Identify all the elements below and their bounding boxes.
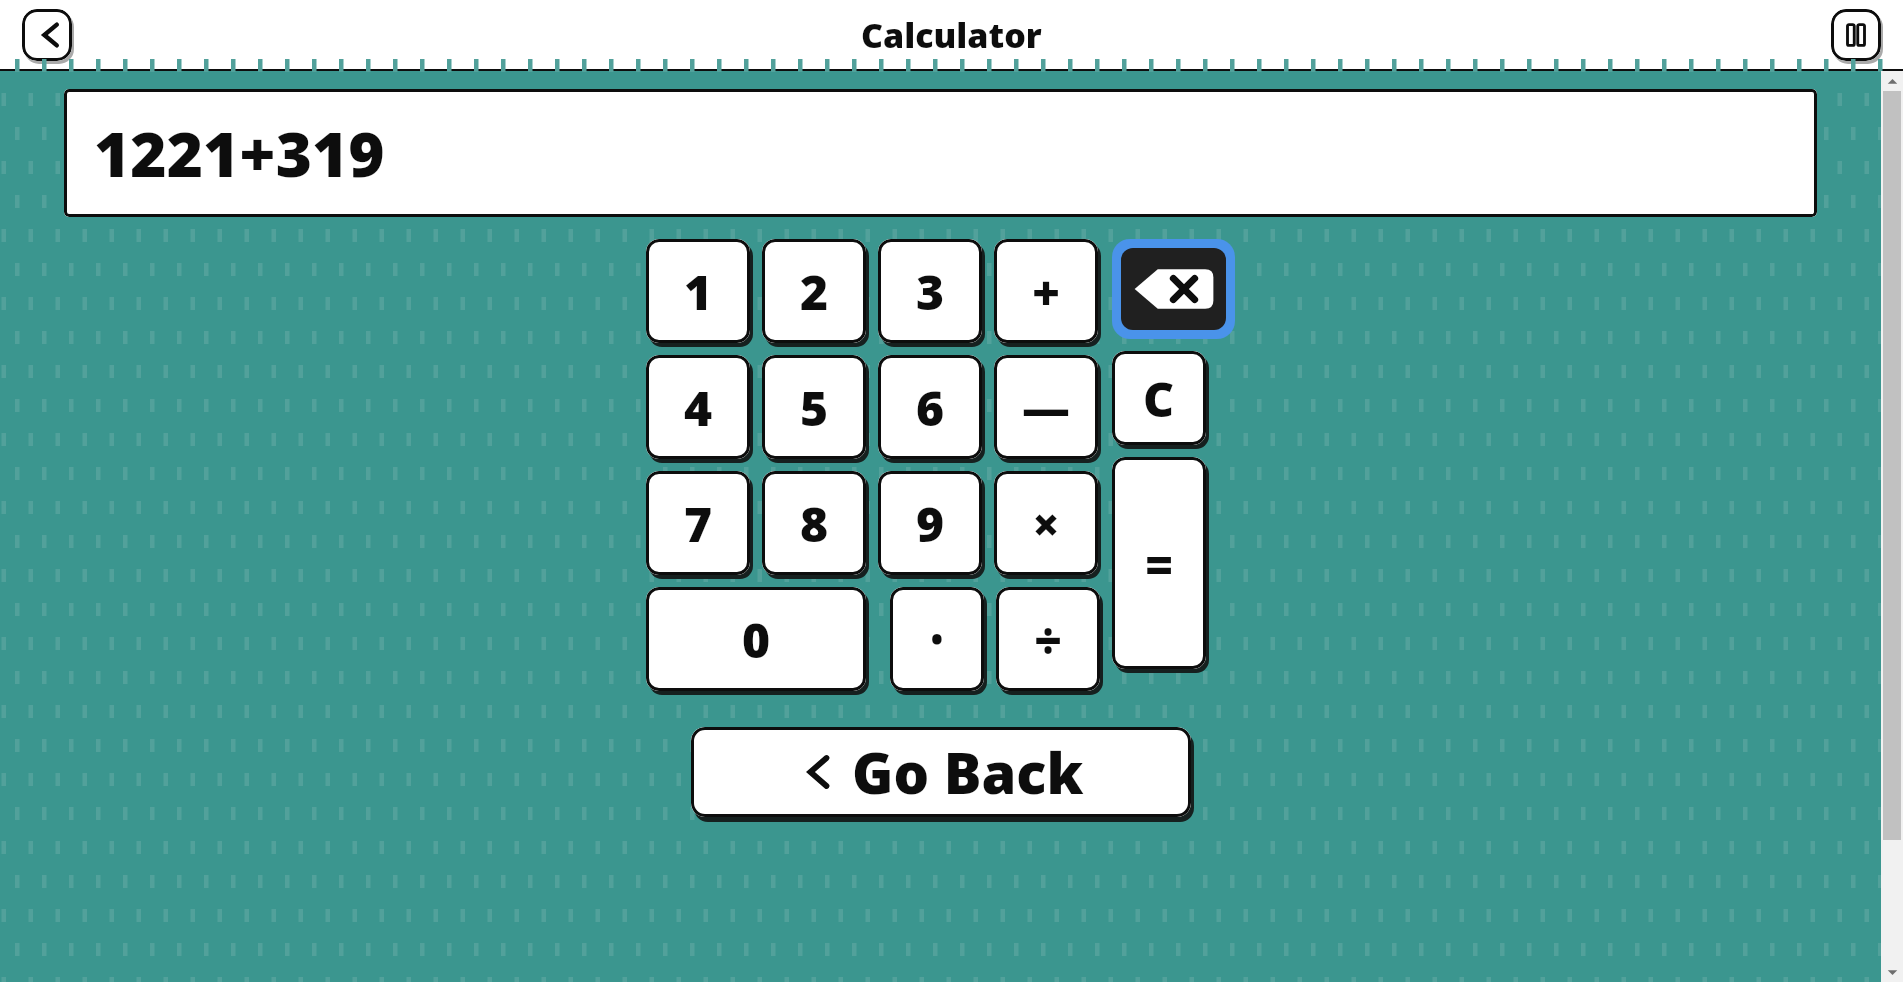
- staticText: 4: [684, 375, 713, 440]
- staticText: •: [931, 619, 943, 660]
- staticText: =: [1145, 531, 1174, 596]
- button[interactable]: 1: [646, 239, 750, 343]
- button[interactable]: =: [1112, 457, 1206, 669]
- staticText: 8: [800, 491, 829, 556]
- button[interactable]: Scroll up: [1881, 71, 1903, 91]
- staticText: 1: [684, 259, 713, 324]
- staticText: Calculator: [861, 12, 1042, 58]
- button[interactable]: ×: [994, 471, 1098, 575]
- staticText: 2: [800, 259, 829, 324]
- staticText: 3: [916, 259, 945, 324]
- staticText: ÷: [1034, 607, 1063, 672]
- button[interactable]: ÷: [996, 587, 1100, 691]
- staticText: 6: [916, 375, 945, 440]
- staticText: +: [1032, 259, 1061, 324]
- button[interactable]: 2: [762, 239, 866, 343]
- button[interactable]: 7: [646, 471, 750, 575]
- staticText: 7: [684, 491, 713, 556]
- button[interactable]: Go Back: [691, 727, 1191, 817]
- button[interactable]: Backspace: [1121, 248, 1226, 330]
- staticText: —: [1022, 375, 1071, 440]
- button[interactable]: 6: [878, 355, 982, 459]
- staticText: C: [1143, 366, 1175, 431]
- button[interactable]: 1221+319: [64, 89, 1817, 217]
- button[interactable]: Scroll down: [1881, 962, 1903, 982]
- button[interactable]: 9: [878, 471, 982, 575]
- button[interactable]: Pause: [1831, 9, 1881, 61]
- staticText: 5: [800, 375, 829, 440]
- button[interactable]: —: [994, 355, 1098, 459]
- button[interactable]: 3: [878, 239, 982, 343]
- staticText: 1221+319: [94, 111, 385, 195]
- staticText: 9: [916, 491, 945, 556]
- staticText: ×: [1032, 491, 1061, 556]
- button[interactable]: +: [994, 239, 1098, 343]
- button[interactable]: 8: [762, 471, 866, 575]
- button[interactable]: 5: [762, 355, 866, 459]
- staticText: 0: [742, 607, 771, 672]
- button[interactable]: 4: [646, 355, 750, 459]
- button[interactable]: •: [890, 587, 984, 691]
- button[interactable]: Back: [22, 9, 72, 61]
- button[interactable]: C: [1112, 351, 1206, 445]
- staticText: Go Back: [852, 734, 1084, 810]
- button[interactable]: 0: [646, 587, 866, 691]
